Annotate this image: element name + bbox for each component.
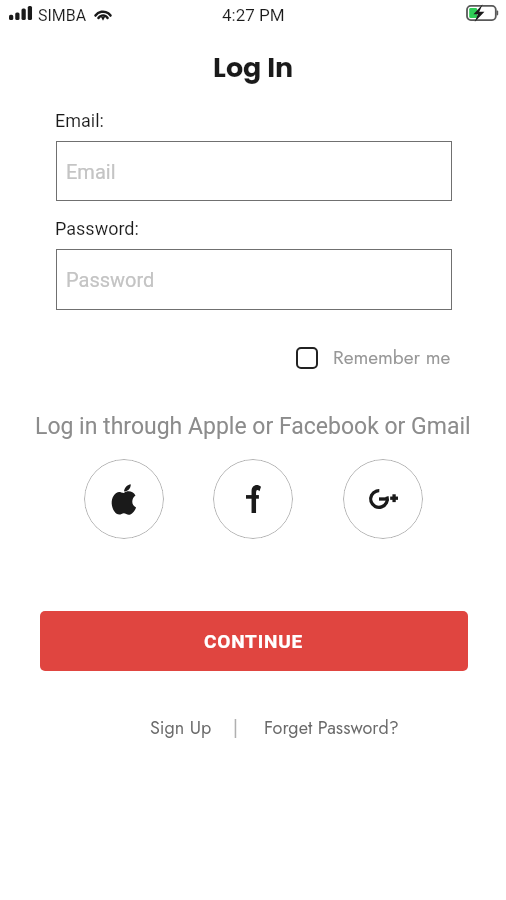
staticText: Email	[66, 160, 116, 183]
button[interactable]: Forget Password?	[264, 715, 399, 741]
button[interactable]: Email	[56, 141, 452, 201]
button[interactable]: Sign in with Facebook	[213, 459, 293, 539]
staticText: 4:27 PM	[222, 5, 285, 25]
staticText: Email:	[55, 110, 104, 131]
button[interactable]: Sign Up	[150, 715, 212, 741]
staticText: CONTINUE	[204, 630, 304, 652]
button[interactable]: CONTINUE	[40, 611, 468, 671]
staticText: Log in through Apple or Facebook or Gmai…	[35, 413, 471, 440]
button[interactable]: Remember me	[296, 344, 451, 371]
staticText: SIMBA	[38, 6, 87, 25]
staticText: Password	[66, 268, 155, 291]
button[interactable]: Sign in with Apple	[84, 459, 164, 539]
staticText: Log In	[213, 49, 294, 87]
staticText: Remember me	[333, 344, 451, 371]
staticText: |	[233, 715, 238, 741]
staticText: Password:	[55, 218, 139, 239]
button[interactable]: Sign in with Google	[343, 459, 423, 539]
button[interactable]: Password	[56, 249, 452, 310]
